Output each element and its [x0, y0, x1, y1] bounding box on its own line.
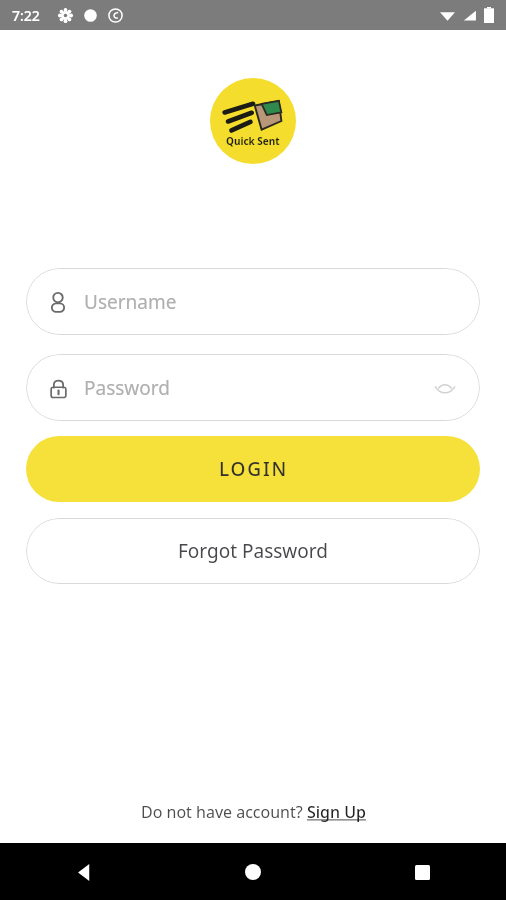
button[interactable]: Password	[26, 354, 480, 421]
button[interactable]: Show password	[432, 375, 458, 401]
staticText: Username	[84, 289, 177, 315]
button[interactable]: Recents	[399, 849, 445, 895]
staticText: Password	[84, 375, 170, 401]
staticText: Do not have account?	[141, 801, 307, 823]
staticText: Forgot Password	[178, 538, 328, 564]
staticText: LOGIN	[219, 456, 288, 482]
button[interactable]: Home	[230, 849, 276, 895]
button[interactable]: Username	[26, 268, 480, 335]
button[interactable]: Sign Up	[307, 801, 366, 823]
staticText: Quick Sent	[226, 134, 280, 148]
button[interactable]: Forgot Password	[26, 518, 480, 584]
button[interactable]: LOGIN	[26, 436, 480, 502]
button[interactable]: Back	[61, 849, 107, 895]
staticText: Sign Up	[307, 801, 366, 823]
staticText: 7:22	[12, 6, 40, 25]
